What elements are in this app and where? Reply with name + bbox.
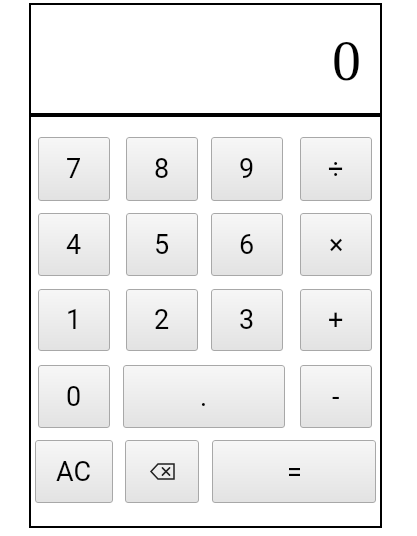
button[interactable]: + xyxy=(300,289,372,351)
staticText: × xyxy=(329,229,344,261)
button[interactable]: . xyxy=(123,365,285,428)
button[interactable]: ÷ xyxy=(300,137,372,201)
staticText: 2 xyxy=(154,304,170,336)
staticText: 5 xyxy=(154,229,170,261)
button[interactable]: 0 xyxy=(38,365,110,428)
button[interactable]: 4 xyxy=(38,213,110,276)
staticText: 8 xyxy=(154,153,170,185)
staticText: 1 xyxy=(66,304,82,336)
staticText: 0 xyxy=(332,28,361,92)
staticText: 3 xyxy=(239,304,255,336)
button[interactable]: 7 xyxy=(38,137,110,201)
button[interactable]: 2 xyxy=(126,289,198,351)
button[interactable]: 3 xyxy=(211,289,283,351)
staticText: 0 xyxy=(66,381,82,413)
button[interactable]: = xyxy=(212,440,376,503)
button[interactable]: × xyxy=(300,213,372,276)
staticText: = xyxy=(287,456,302,488)
button[interactable] xyxy=(125,440,199,503)
button[interactable]: 6 xyxy=(211,213,283,276)
staticText: AC xyxy=(56,456,92,488)
staticText: ÷ xyxy=(328,153,344,185)
staticText: 7 xyxy=(66,153,82,185)
button[interactable]: 8 xyxy=(126,137,198,201)
staticText: - xyxy=(332,381,340,413)
staticText: 6 xyxy=(239,229,255,261)
button[interactable]: 1 xyxy=(38,289,110,351)
staticText: . xyxy=(200,381,208,413)
staticText: + xyxy=(328,304,344,336)
button[interactable]: 9 xyxy=(211,137,283,201)
staticText: 9 xyxy=(239,153,255,185)
button[interactable]: AC xyxy=(35,440,113,503)
button[interactable]: - xyxy=(300,365,372,428)
staticText: 4 xyxy=(66,229,82,261)
button[interactable]: 5 xyxy=(126,213,198,276)
